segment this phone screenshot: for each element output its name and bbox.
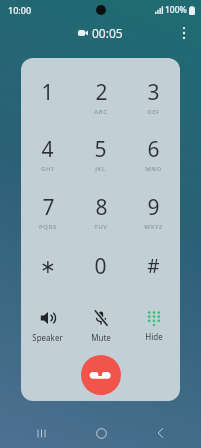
button[interactable]: 9 [127,183,180,241]
staticText: 3 [147,78,160,107]
staticText: WXYZ [144,223,163,231]
button[interactable]: Back [147,420,173,446]
staticText: # [147,253,160,279]
staticText: ABC [94,108,108,116]
staticText: GHI [41,165,54,173]
button[interactable]: Home [88,420,114,446]
button[interactable]: Hide [127,303,180,349]
button[interactable]: 0 [74,241,127,299]
staticText: 1 [41,78,54,107]
staticText: ∗ [40,255,56,277]
staticText: 9 [147,193,160,222]
button[interactable]: 4 [21,125,74,183]
button[interactable]: Speaker [21,303,74,349]
staticText: 00:05 [92,25,123,41]
staticText: 7 [42,193,55,222]
button[interactable]: 2 [74,68,127,125]
staticText: JKL [95,165,106,173]
staticText: 8 [95,193,108,222]
staticText: PQRS [39,223,57,231]
button[interactable]: 7 [21,183,74,241]
button[interactable]: More options [173,22,195,44]
staticText: 100% [165,4,187,16]
button[interactable]: # [127,241,180,299]
staticText: TUV [94,223,108,231]
button[interactable]: End call [81,355,121,395]
staticText: Mute [91,332,111,343]
staticText: 6 [147,135,160,164]
button[interactable]: 6 [127,125,180,183]
staticText: 2 [95,78,108,107]
staticText: Hide [145,331,163,342]
button[interactable]: 1 [21,68,74,125]
staticText: 5 [94,135,107,164]
staticText: 10:00 [8,4,32,16]
staticText: MNO [145,165,162,173]
staticText: 0 [94,252,107,281]
staticText: Speaker [32,332,63,343]
staticText: DEF [147,108,160,116]
button[interactable]: 5 [74,125,127,183]
button[interactable]: 8 [74,183,127,241]
button[interactable]: ∗ [21,241,74,299]
button[interactable]: Recent apps [28,420,54,446]
button[interactable]: 3 [127,68,180,125]
staticText: 4 [41,135,54,164]
button[interactable]: Mute [74,303,127,349]
